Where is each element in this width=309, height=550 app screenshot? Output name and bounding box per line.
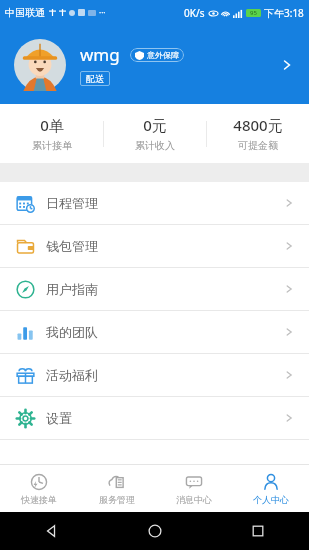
staticText: 用户指南 xyxy=(46,281,98,297)
staticText: ··· xyxy=(99,7,106,18)
button[interactable]: Recent apps xyxy=(206,512,309,550)
staticText: 个人中心 xyxy=(253,494,289,505)
staticText: 设置 xyxy=(46,410,72,426)
staticText: 0K/s xyxy=(184,6,205,20)
button[interactable]: 活动福利 xyxy=(0,354,309,396)
button[interactable]: 4800元 xyxy=(207,115,309,152)
staticText: 累计收入 xyxy=(135,139,175,152)
button[interactable]: 用户指南 xyxy=(0,268,309,310)
button[interactable]: 日程管理 xyxy=(0,182,309,224)
staticText: 我的团队 xyxy=(46,324,98,340)
staticText: 快速接单 xyxy=(21,494,57,505)
staticText: 意外保障 xyxy=(147,50,179,60)
staticText: 0单 xyxy=(40,115,64,135)
staticText: 累计接单 xyxy=(32,139,72,152)
button[interactable]: Home xyxy=(103,512,206,550)
staticText: 钱包管理 xyxy=(46,238,98,254)
staticText: 日程管理 xyxy=(46,195,98,211)
button[interactable]: 个人中心 xyxy=(232,465,309,512)
staticText: 0元 xyxy=(143,115,167,135)
staticText: 活动福利 xyxy=(46,367,98,383)
staticText: 服务管理 xyxy=(99,494,135,505)
staticText: 配送 xyxy=(86,73,104,84)
staticText: 95 xyxy=(250,9,257,17)
button[interactable]: 钱包管理 xyxy=(0,225,309,267)
button[interactable]: 消息中心 xyxy=(155,465,232,512)
button[interactable]: 0单 xyxy=(0,115,103,152)
button[interactable]: Back xyxy=(0,512,103,550)
staticText: 可提金额 xyxy=(238,139,278,152)
button[interactable]: 设置 xyxy=(0,397,309,439)
staticText: wmg xyxy=(80,43,120,66)
button[interactable]: 我的团队 xyxy=(0,311,309,353)
button[interactable]: 0元 xyxy=(104,115,206,152)
staticText: 下午3:18 xyxy=(264,6,304,20)
button[interactable]: 服务管理 xyxy=(78,465,155,512)
staticText: 中国联通 xyxy=(5,6,45,19)
button[interactable]: wmg xyxy=(0,25,309,104)
button[interactable]: 快速接单 xyxy=(0,465,78,512)
staticText: 4800元 xyxy=(233,115,283,135)
staticText: 消息中心 xyxy=(176,494,212,505)
